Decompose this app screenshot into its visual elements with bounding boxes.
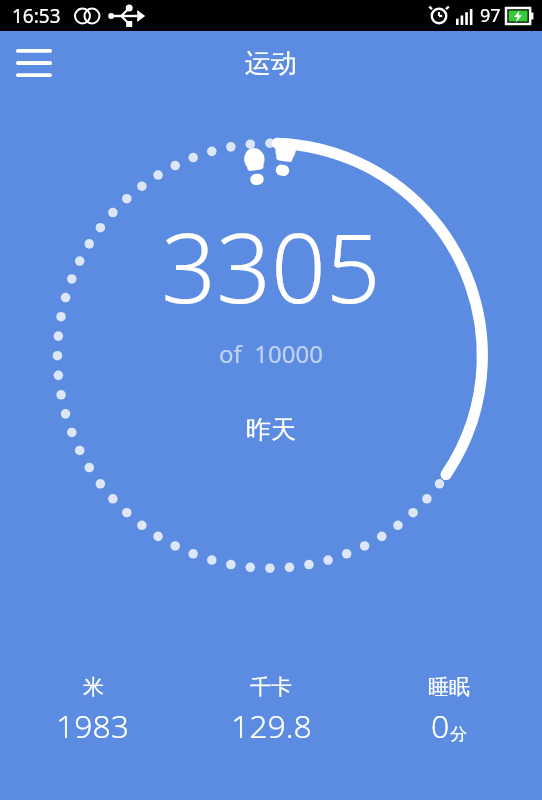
button[interactable]: 米	[4, 668, 182, 754]
staticText: 1983	[56, 704, 130, 748]
staticText: 16:53	[12, 3, 61, 29]
staticText: 昨天	[246, 414, 296, 445]
staticText: 米	[83, 674, 104, 700]
button[interactable]: 千卡	[182, 668, 360, 754]
staticText: 千卡	[250, 674, 292, 700]
staticText: of 10000	[219, 337, 323, 370]
staticText: 运动	[245, 47, 297, 80]
staticText: 分	[450, 724, 467, 745]
staticText: 3305	[161, 200, 381, 331]
button[interactable]: Menu	[8, 37, 60, 89]
staticText: 97	[480, 3, 501, 28]
staticText: 129.8	[231, 704, 312, 748]
staticText: 0	[431, 704, 450, 748]
button[interactable]: 睡眠	[360, 668, 538, 754]
staticText: 睡眠	[428, 674, 470, 700]
